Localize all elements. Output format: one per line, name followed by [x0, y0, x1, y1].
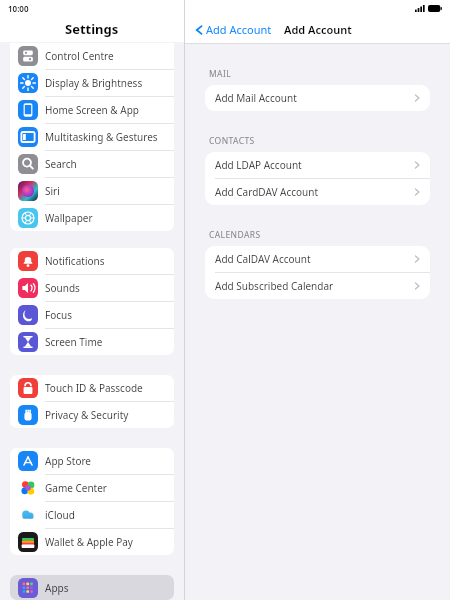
button[interactable]: Add Subscribed Calendar — [205, 273, 430, 299]
staticText: Privacy & Security — [45, 408, 129, 422]
button[interactable]: iCloud — [10, 502, 174, 529]
button[interactable]: Apps — [10, 575, 174, 600]
staticText: Display & Brightness — [45, 76, 143, 90]
button[interactable]: Add CardDAV Account — [205, 179, 430, 205]
button[interactable]: Wallpaper — [10, 205, 174, 231]
button[interactable]: Add Account — [195, 22, 272, 37]
button[interactable]: Notifications — [10, 248, 174, 275]
staticText: Add Account — [206, 22, 272, 37]
button[interactable]: Display & Brightness — [10, 70, 174, 97]
staticText: Sounds — [45, 281, 80, 295]
staticText: Settings — [65, 20, 119, 38]
staticText: 10:00 — [8, 3, 29, 14]
staticText: Apps — [45, 581, 69, 595]
staticText: Wallet & Apple Pay — [45, 535, 133, 549]
button[interactable]: Game Center — [10, 475, 174, 502]
button[interactable]: Control Centre — [10, 43, 174, 70]
button[interactable]: Privacy & Security — [10, 402, 174, 428]
staticText: Screen Time — [45, 335, 103, 349]
staticText: CONTACTS — [209, 135, 255, 147]
staticText: Siri — [45, 184, 60, 198]
staticText: App Store — [45, 454, 92, 468]
staticText: Game Center — [45, 481, 107, 495]
staticText: Add CardDAV Account — [215, 185, 318, 199]
button[interactable]: App Store — [10, 448, 174, 475]
button[interactable]: Add Mail Account — [205, 85, 430, 111]
button[interactable]: Sounds — [10, 275, 174, 302]
staticText: Add CalDAV Account — [215, 252, 311, 266]
button[interactable]: Wallet & Apple Pay — [10, 529, 174, 555]
staticText: Add LDAP Account — [215, 158, 302, 172]
staticText: Focus — [45, 308, 73, 322]
button[interactable]: Screen Time — [10, 329, 174, 355]
staticText: Add Subscribed Calendar — [215, 279, 334, 293]
button[interactable]: Add LDAP Account — [205, 152, 430, 179]
button[interactable]: Search — [10, 151, 174, 178]
staticText: MAIL — [209, 68, 232, 80]
staticText: Add Mail Account — [215, 91, 297, 105]
staticText: Control Centre — [45, 49, 114, 63]
button[interactable]: Home Screen & App Library — [10, 97, 174, 124]
staticText: Notifications — [45, 254, 105, 268]
button[interactable]: Multitasking & Gestures — [10, 124, 174, 151]
staticText: Wallpaper — [45, 211, 93, 225]
button[interactable]: Focus — [10, 302, 174, 329]
staticText: Search — [45, 157, 77, 171]
staticText: CALENDARS — [209, 229, 261, 241]
staticText: iCloud — [45, 508, 75, 522]
staticText: Multitasking & Gestures — [45, 130, 158, 144]
staticText: Add Account — [284, 22, 352, 37]
staticText: Home Screen & App Library — [45, 103, 174, 117]
button[interactable]: Touch ID & Passcode — [10, 375, 174, 402]
button[interactable]: Add CalDAV Account — [205, 246, 430, 273]
button[interactable]: Siri — [10, 178, 174, 205]
staticText: Touch ID & Passcode — [45, 381, 143, 395]
